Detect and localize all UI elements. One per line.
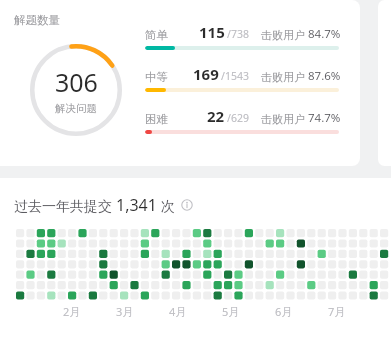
other: 说明 [181,199,193,211]
staticText: 74.7% [308,110,341,126]
staticText: 解题数量 [14,13,60,27]
staticText: 2月 [63,304,81,319]
staticText: 87.6% [308,68,341,84]
button[interactable]: 中等 [145,64,341,84]
staticText: 简单 [145,28,168,42]
staticText: 6月 [275,304,293,319]
button[interactable]: 困难 [145,106,341,126]
staticText: 115 [199,22,225,42]
staticText: 3月 [116,304,134,319]
staticText: 击败用户 [261,27,308,42]
staticText: 4月 [169,304,187,319]
staticText: 次 [157,196,175,215]
staticText: /738 [227,27,249,41]
staticText: 击败用户 [261,111,308,126]
staticText: 解决问题 [55,102,97,115]
staticText: 306 [55,65,98,99]
staticText: 84.7% [308,26,341,42]
staticText: 22 [207,106,225,126]
staticText: 困难 [145,112,168,126]
staticText: 7月 [328,304,346,319]
staticText: /629 [227,111,249,125]
button[interactable]: 过去一年共提交 [14,194,193,216]
staticText: 169 [193,64,219,84]
staticText: 1,341 [116,194,157,216]
staticText: 过去一年共提交 [14,196,116,215]
staticText: /1543 [221,69,249,83]
staticText: 5月 [222,304,240,319]
staticText: 中等 [145,70,168,84]
staticText: 击败用户 [261,69,308,84]
button[interactable]: 简单 [145,22,341,42]
